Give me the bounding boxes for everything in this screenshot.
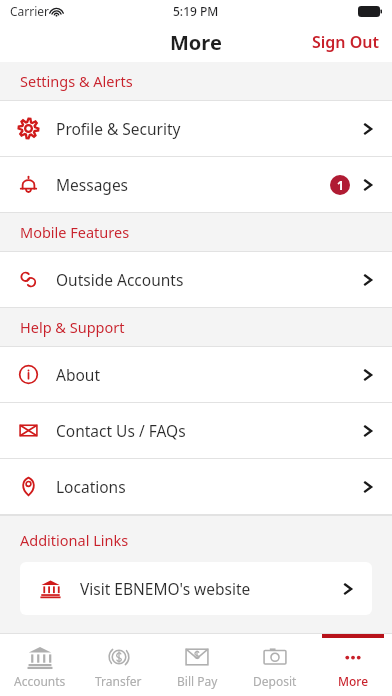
staticText: Contact Us / FAQs [56,420,360,441]
staticText: 1 [337,177,344,193]
staticText: Outside Accounts [56,269,360,290]
staticText: More [338,673,369,689]
staticText: Visit EBNEMO's website [80,578,340,599]
button[interactable]: About [0,347,392,402]
staticText: Deposit [253,673,297,689]
staticText: Transfer [95,673,142,689]
staticText: About [56,364,360,385]
staticText: Carrier [10,3,50,19]
staticText: 5:19 PM [173,3,219,19]
button[interactable]: Locations [0,459,392,514]
button[interactable]: Outside Accounts [0,252,392,307]
button[interactable]: Contact Us / FAQs [0,403,392,458]
staticText: Accounts [14,673,66,689]
staticText: Help & Support [20,317,125,337]
button[interactable]: More [314,634,392,696]
staticText: Messages [56,174,330,195]
staticText: Bill Pay [177,673,218,689]
button[interactable]: Messages [0,157,392,212]
staticText: Mobile Features [20,222,130,242]
staticText: Sign Out [312,31,380,53]
button[interactable]: Visit EBNEMO's website [20,562,372,615]
staticText: More [170,29,222,56]
staticText: Locations [56,476,360,497]
staticText: Profile & Security [56,118,360,139]
button[interactable]: Accounts [0,634,79,696]
staticText: Settings & Alerts [20,71,133,91]
button[interactable]: Sign Out [300,25,392,59]
button[interactable]: Transfer [79,634,158,696]
button[interactable]: Profile & Security [0,101,392,156]
button[interactable]: Bill Pay [158,634,236,696]
staticText: Additional Links [20,530,129,550]
button[interactable]: Deposit [236,634,314,696]
